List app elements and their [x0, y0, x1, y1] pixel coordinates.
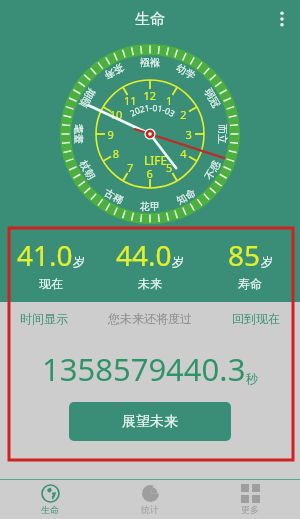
button[interactable]: More options [267, 4, 297, 34]
staticText: 统计 [141, 504, 159, 515]
staticText: 41.0 [17, 236, 73, 274]
staticText: 生命 [41, 504, 59, 515]
staticText: 44.0 [116, 236, 172, 274]
button[interactable]: 回到现在 [232, 311, 280, 326]
button[interactable]: 85 [200, 236, 300, 291]
staticText: 85 [228, 236, 261, 274]
staticText: 岁 [73, 254, 85, 269]
staticText: 更多 [241, 504, 259, 515]
staticText: 岁 [172, 254, 184, 269]
staticText: 未来 [138, 276, 162, 291]
staticText: 时间显示 [20, 311, 68, 326]
button[interactable]: 44.0 [100, 236, 200, 291]
staticText: 生命 [135, 10, 165, 29]
staticText: 1358579440.3 [42, 348, 246, 390]
button[interactable]: 展望未来 [69, 402, 231, 441]
staticText: 回到现在 [232, 311, 280, 326]
staticText: 寿命 [238, 276, 262, 291]
button[interactable]: 更多 [200, 484, 300, 515]
staticText: 秒 [246, 371, 258, 386]
staticText: 现在 [39, 276, 63, 291]
button[interactable]: 时间显示 [20, 311, 68, 326]
staticText: 岁 [261, 254, 273, 269]
staticText: 展望未来 [122, 413, 178, 431]
button[interactable]: 统计 [100, 484, 200, 515]
button[interactable]: 41.0 [1, 236, 100, 291]
button[interactable]: 生命 [0, 484, 100, 515]
staticText: 您未来还将度过 [108, 311, 192, 326]
